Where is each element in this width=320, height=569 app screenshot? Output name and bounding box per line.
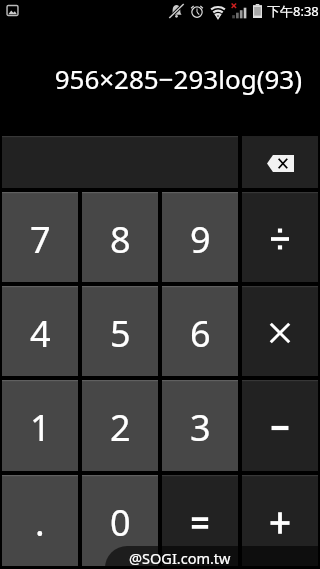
- button[interactable]: 1: [2, 380, 78, 471]
- staticText: 956×285−293log(93): [54, 61, 302, 96]
- staticText: 下午8:38: [267, 2, 319, 20]
- button[interactable]: Multiply: [242, 286, 318, 376]
- button[interactable]: Subtract: [242, 380, 318, 471]
- button[interactable]: 0: [82, 475, 158, 566]
- staticText: 0: [110, 498, 131, 547]
- staticText: 4: [30, 309, 51, 358]
- staticText: 8: [110, 215, 131, 264]
- staticText: 3: [190, 403, 211, 452]
- button[interactable]: .: [2, 475, 78, 566]
- button[interactable]: 7: [2, 192, 78, 282]
- staticText: 5: [110, 309, 131, 358]
- staticText: 7: [30, 215, 51, 264]
- staticText: @SOGI.com.tw: [129, 548, 231, 568]
- button[interactable]: 8: [82, 192, 158, 282]
- button[interactable]: 3: [162, 380, 238, 471]
- button[interactable]: Add: [242, 475, 318, 566]
- staticText: .: [35, 498, 45, 547]
- staticText: 2: [110, 403, 131, 452]
- button[interactable]: 4: [2, 286, 78, 376]
- staticText: 9: [190, 215, 211, 264]
- button[interactable]: Backspace: [242, 136, 318, 188]
- staticText: 6: [190, 309, 211, 358]
- staticText: 1: [30, 403, 51, 452]
- button[interactable]: Divide: [242, 192, 318, 282]
- button[interactable]: 9: [162, 192, 238, 282]
- button[interactable]: 5: [82, 286, 158, 376]
- button[interactable]: Equals: [162, 475, 238, 566]
- button[interactable]: 2: [82, 380, 158, 471]
- button[interactable]: 6: [162, 286, 238, 376]
